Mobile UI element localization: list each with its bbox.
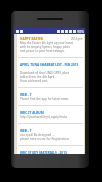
staticText: http://youthweb/tryit_apply/trivia bbox=[20, 115, 67, 119]
staticText: WEB - T bbox=[20, 129, 32, 133]
staticText: APRIL TUNA SHABBAT LIST - FEB 2013 bbox=[20, 63, 79, 67]
staticText: please note a user for Registration. bbox=[20, 137, 70, 141]
staticText: WRC-IT ALBUM bbox=[20, 111, 44, 115]
staticText: our q will Be designed ... bbox=[20, 133, 55, 137]
staticText: 2014 gen bbox=[71, 37, 83, 41]
staticText: and peace to your heart always. bbox=[20, 49, 65, 53]
staticText: WEB - T bbox=[20, 93, 32, 97]
staticText: Please find the app for latest news bbox=[20, 97, 69, 101]
button[interactable]: WRC-IT ALBUM bbox=[17, 106, 84, 123]
button[interactable]: WEB - T bbox=[17, 88, 84, 105]
staticText: Download all that UNIX GPRS jokes bbox=[20, 71, 70, 75]
button[interactable]: WEB - T bbox=[17, 124, 84, 145]
button[interactable]: WRC STUDY MATERIALS - 2013 bbox=[17, 146, 84, 154]
staticText: 90% bbox=[77, 29, 84, 34]
staticText: tables from the 4th April. bbox=[20, 75, 56, 79]
staticText: Have a blessed cart. bbox=[20, 79, 49, 83]
staticText: with its singing hymns, happy jokes bbox=[20, 45, 70, 49]
button[interactable]: HAPPY EASTER bbox=[17, 34, 84, 57]
button[interactable]: APRIL TUNA SHABBAT LIST - FEB 2013 bbox=[17, 58, 84, 87]
staticText: WRC STUDY MATERIALS - 2013 bbox=[20, 151, 67, 154]
staticText: HAPPY EASTER bbox=[20, 37, 43, 41]
staticText: May the Easter life light up your heart bbox=[20, 41, 74, 45]
